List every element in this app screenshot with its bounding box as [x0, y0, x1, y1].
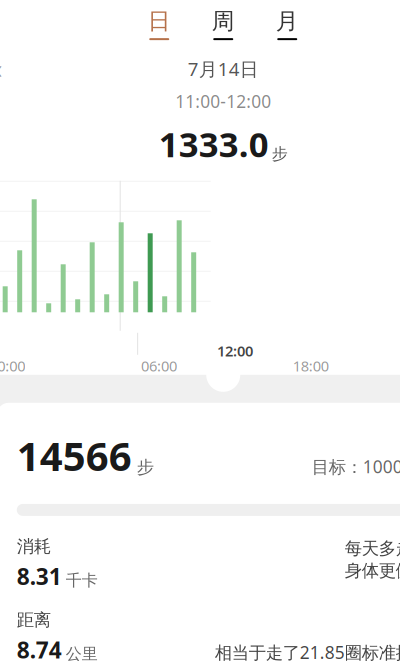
- staticText: 消耗: [17, 536, 51, 557]
- staticText: 距离: [17, 609, 51, 631]
- staticText: 日: [148, 7, 171, 35]
- staticText: 身体更健康: [345, 560, 400, 581]
- staticText: ‹: [0, 51, 2, 86]
- staticText: 相当于走了21.85圈标准操场: [215, 641, 400, 661]
- button[interactable]: 周: [191, 6, 255, 42]
- staticText: 14566: [17, 429, 132, 482]
- button[interactable]: 日: [127, 6, 191, 42]
- staticText: 7月14日: [188, 56, 259, 81]
- staticText: 8.31: [17, 561, 62, 591]
- button[interactable]: Previous day: [0, 56, 21, 82]
- staticText: 步: [272, 144, 288, 164]
- button[interactable]: 月: [255, 6, 319, 42]
- staticText: 8.74: [17, 635, 62, 661]
- staticText: 18:00: [293, 356, 329, 376]
- staticText: 千卡: [66, 571, 98, 590]
- staticText: 每天多走动: [345, 538, 400, 559]
- staticText: 公里: [66, 644, 98, 661]
- staticText: 1333.0: [159, 121, 269, 167]
- staticText: 11:00-12:00: [175, 90, 271, 113]
- staticText: 目标：10000步: [312, 455, 400, 478]
- staticText: 12:00: [217, 341, 253, 361]
- staticText: 周: [212, 7, 235, 35]
- staticText: 步: [137, 457, 154, 478]
- staticText: 06:00: [141, 356, 177, 376]
- staticText: 月: [276, 7, 299, 35]
- staticText: 00:00: [0, 356, 25, 376]
